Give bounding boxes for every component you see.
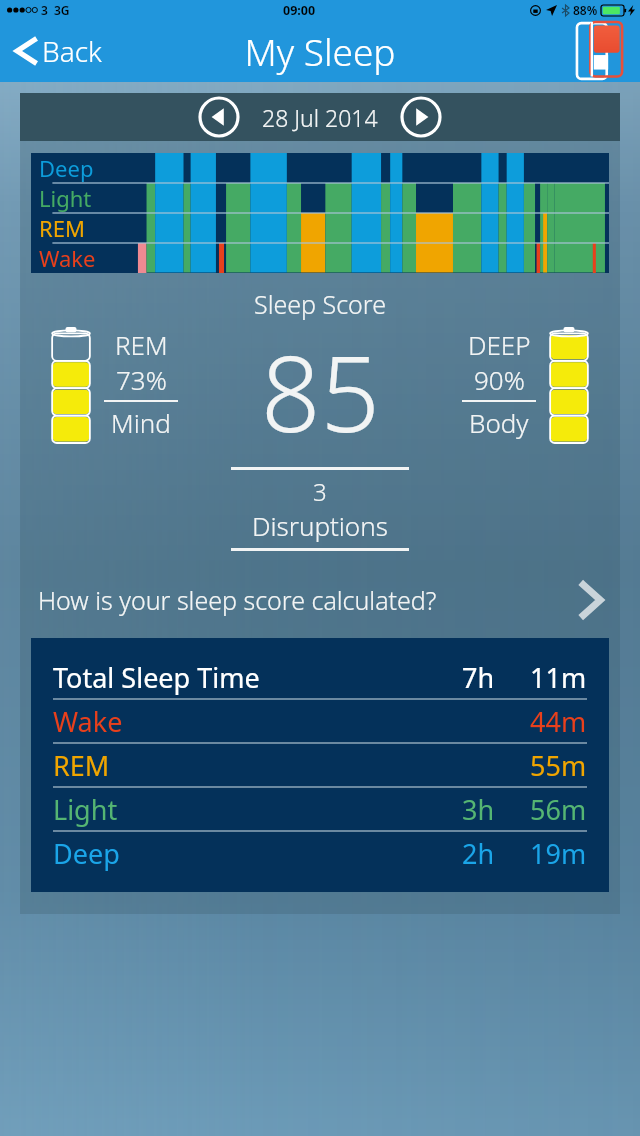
staticText: Deep [53,835,120,872]
staticText: 88% [573,2,598,18]
staticText: Disruptions [252,508,388,543]
staticText: REM [115,327,168,362]
button[interactable]: Back [12,26,106,76]
staticText: 7h [462,659,495,696]
staticText: Wake [39,243,96,273]
staticText: 73% [116,362,167,397]
staticText: 3 [41,2,48,18]
staticText: Mind [111,405,171,440]
staticText: Back [42,32,102,70]
staticText: 19m [530,835,587,872]
staticText: DEEP [468,327,531,362]
staticText: 44m [530,703,587,740]
staticText: Light [39,183,92,213]
staticText: 3 [313,475,327,508]
staticText: Wake [53,703,123,740]
staticText: 90% [474,362,525,397]
staticText: 56m [530,791,587,828]
staticText: 09:00 [283,2,316,19]
staticText: Sleep Score [254,287,386,321]
staticText: 2h [462,835,495,872]
staticText: Light [53,791,118,828]
button[interactable]: Sleep diary [576,22,624,80]
staticText: Deep [39,153,94,183]
staticText: Body [469,405,529,440]
staticText: 28 Jul 2014 [262,102,378,133]
staticText: 11m [530,659,587,696]
staticText: 3G [54,2,70,18]
staticText: 3h [462,791,495,828]
staticText: 85 [261,321,380,463]
button[interactable]: Previous day [198,96,240,138]
staticText: REM [53,747,110,784]
staticText: 55m [530,747,587,784]
staticText: REM [39,213,85,243]
staticText: Total Sleep Time [53,659,260,696]
staticText: My Sleep [244,26,396,76]
staticText: How is your sleep score calculated? [38,583,437,617]
button[interactable]: Next day [400,96,442,138]
button[interactable]: How is your sleep score calculated? [20,570,620,630]
